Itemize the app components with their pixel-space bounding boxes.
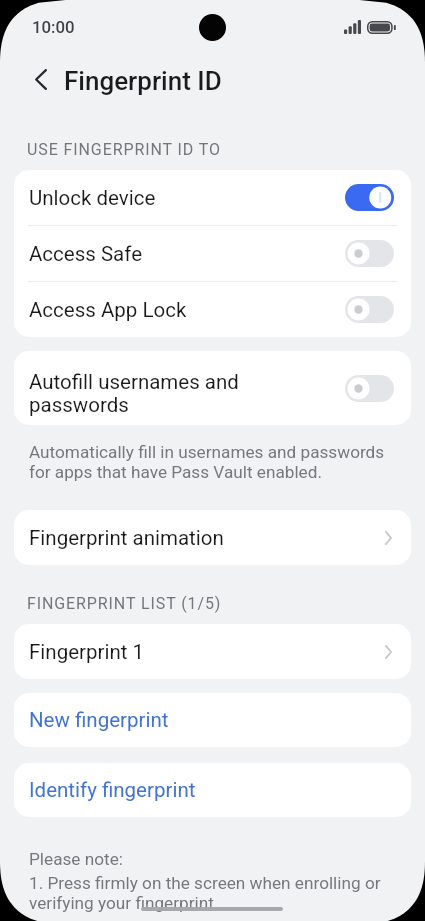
staticText: New fingerprint	[29, 708, 169, 732]
staticText: Access Safe	[29, 242, 345, 266]
staticText: 1. Press firmly on the screen when enrol…	[29, 873, 381, 913]
button[interactable]: Fingerprint 1	[14, 624, 411, 679]
staticText: Fingerprint animation	[29, 526, 385, 550]
button[interactable]: Autofill usernames and passwords	[14, 351, 411, 425]
staticText: Please note:	[29, 849, 123, 869]
button[interactable]: Access Safe	[14, 226, 411, 281]
staticText: Unlock device	[29, 186, 345, 210]
staticText: USE FINGERPRINT ID TO	[27, 140, 221, 159]
button[interactable]: New fingerprint	[14, 693, 411, 747]
button[interactable]: Access App Lock	[14, 282, 411, 337]
button[interactable]: Back	[26, 64, 56, 94]
button[interactable]: Unlock device	[14, 170, 411, 225]
staticText: FINGERPRINT LIST (1/5)	[27, 594, 222, 613]
button[interactable]: Identify fingerprint	[14, 763, 411, 817]
staticText: Autofill usernames and passwords	[29, 370, 345, 417]
staticText: Fingerprint ID	[64, 66, 222, 96]
staticText: Access App Lock	[29, 298, 345, 322]
staticText: Automatically fill in usernames and pass…	[29, 442, 385, 482]
staticText: Identify fingerprint	[29, 778, 196, 802]
staticText: 10:00	[32, 17, 75, 37]
staticText: Fingerprint 1	[29, 640, 385, 664]
button[interactable]: Fingerprint animation	[14, 510, 411, 565]
